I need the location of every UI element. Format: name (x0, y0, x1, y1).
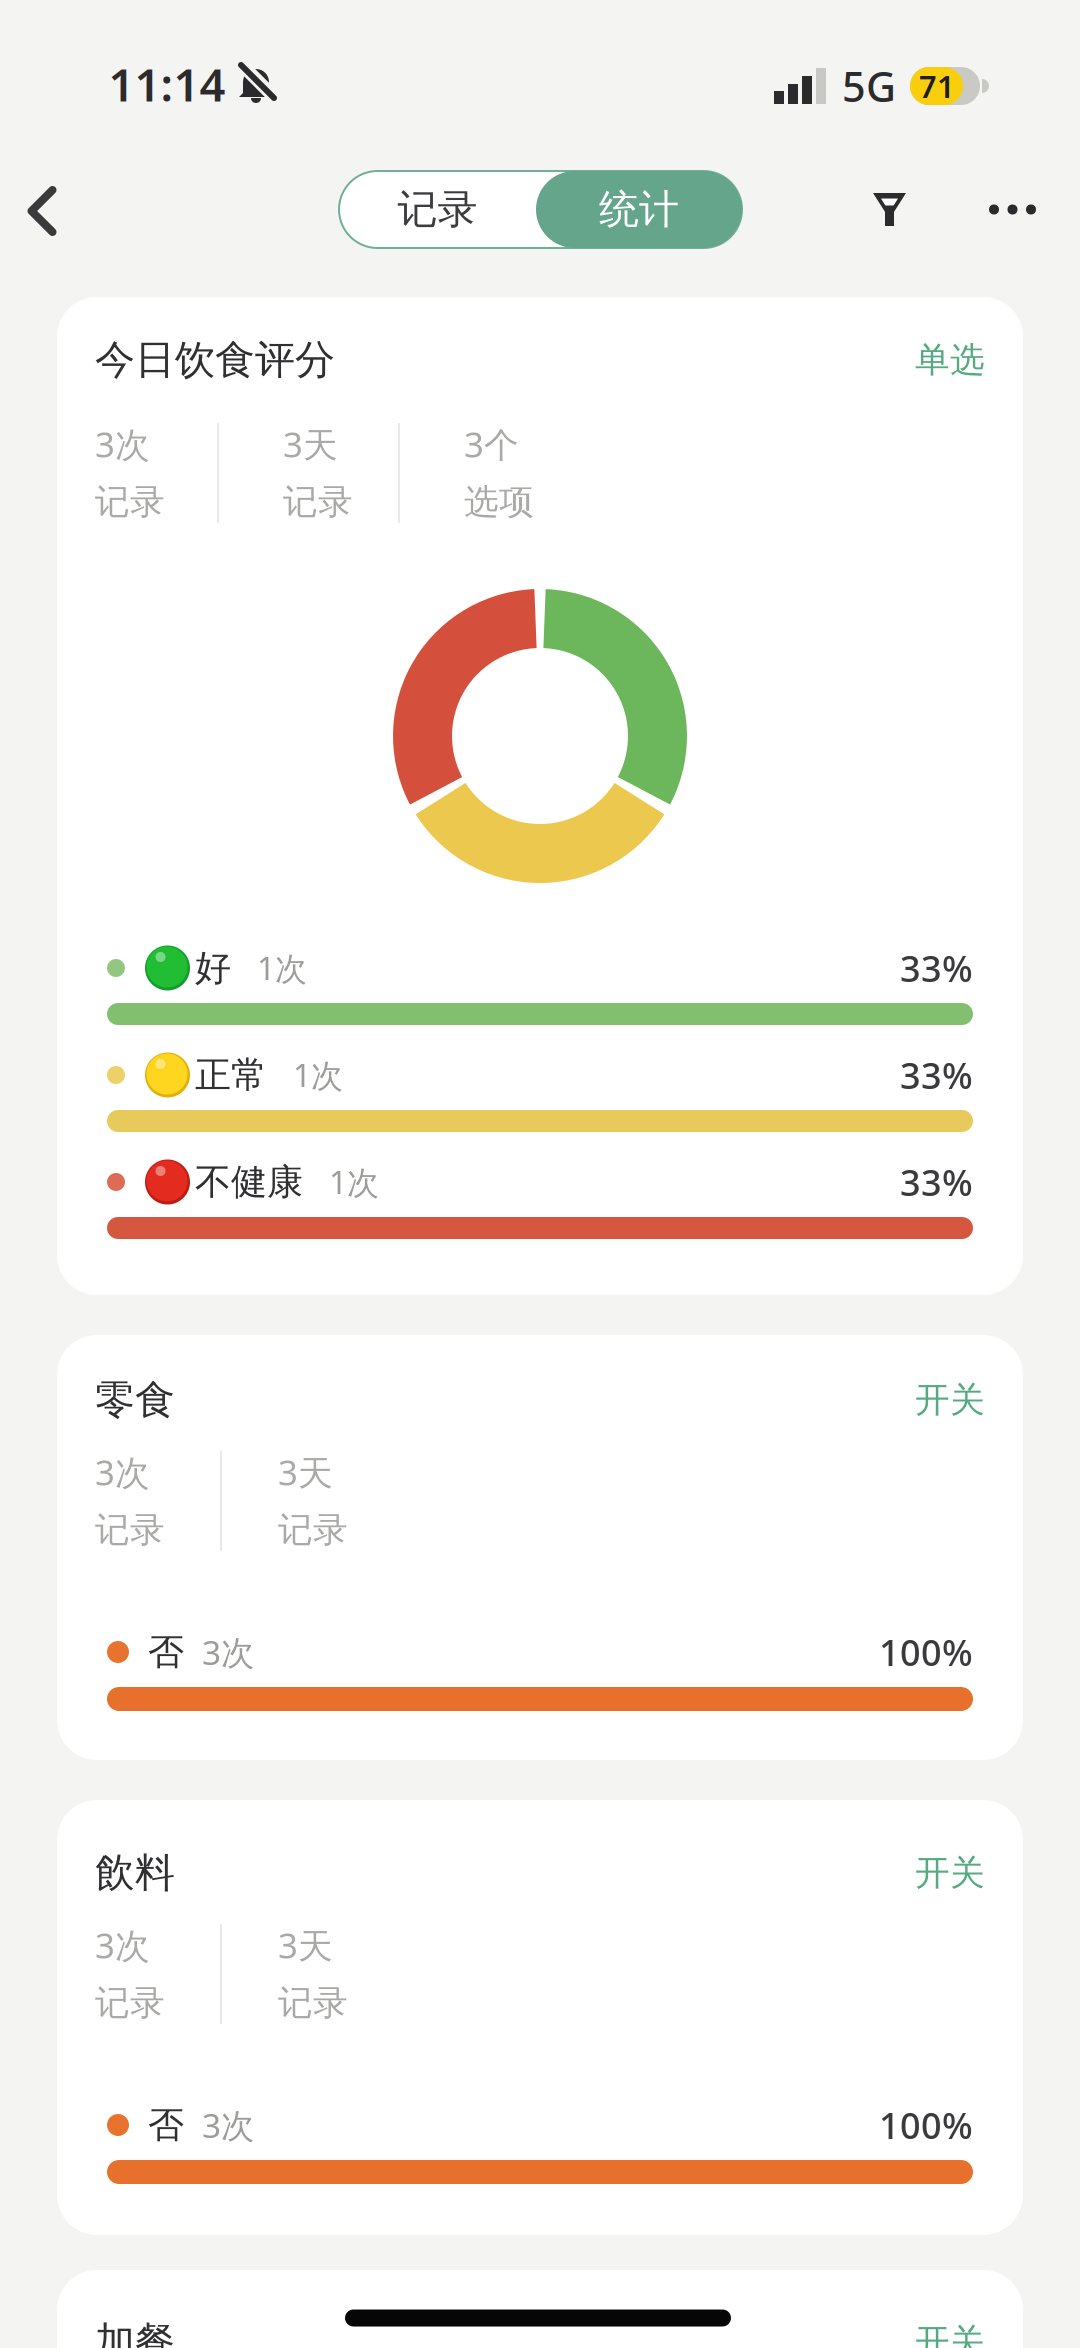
staticText: 5G (842, 59, 896, 113)
staticText: 33% (900, 1158, 973, 1206)
staticText: 单选 (915, 339, 985, 381)
button[interactable]: Filter (857, 177, 921, 241)
staticText: 记录 (95, 1509, 165, 1551)
staticText: 开关 (915, 2321, 985, 2348)
staticText: 33% (900, 1051, 973, 1099)
button[interactable]: 记录 (339, 171, 536, 248)
staticText: 记录 (283, 481, 353, 523)
staticText: 11:14 (108, 54, 225, 114)
staticText: 1次 (293, 1054, 343, 1096)
staticText: 71 (919, 66, 955, 106)
staticText: 否 (148, 1630, 184, 1674)
button[interactable]: 单选 (915, 339, 985, 381)
staticText: 3次 (202, 1630, 254, 1674)
staticText: 3天 (278, 1922, 333, 1968)
staticText: 3次 (95, 1449, 150, 1495)
staticText: 记录 (95, 1982, 165, 2024)
button[interactable]: More (974, 179, 1050, 239)
staticText: 3天 (283, 421, 338, 467)
button[interactable]: 开关 (915, 1852, 985, 1894)
staticText: 加餐 (95, 2317, 175, 2348)
staticText: 记录 (278, 1509, 348, 1551)
button[interactable]: 开关 (915, 2321, 985, 2348)
staticText: 1次 (329, 1161, 379, 1203)
staticText: 飲料 (95, 1848, 175, 1897)
staticText: 今日饮食评分 (95, 335, 335, 384)
staticText: 33% (900, 944, 973, 992)
staticText: 记录 (278, 1982, 348, 2024)
staticText: 记录 (95, 481, 165, 523)
staticText: 3天 (278, 1449, 333, 1495)
staticText: 1次 (257, 947, 307, 989)
staticText: 零食 (95, 1375, 175, 1424)
staticText: 不健康 (195, 1160, 303, 1204)
staticText: 100% (879, 1628, 973, 1676)
staticText: 开关 (915, 1852, 985, 1894)
staticText: 统计 (599, 185, 679, 234)
staticText: 否 (148, 2103, 184, 2147)
staticText: 100% (879, 2101, 973, 2149)
staticText: 记录 (397, 185, 477, 234)
staticText: 3个 (464, 421, 519, 467)
staticText: 好 (195, 946, 231, 990)
staticText: 开关 (915, 1379, 985, 1421)
staticText: 3次 (95, 1922, 150, 1968)
button[interactable]: Back (9, 179, 73, 243)
staticText: 3次 (95, 421, 150, 467)
button[interactable]: 统计 (536, 171, 742, 248)
staticText: 正常 (195, 1053, 267, 1097)
button[interactable]: 开关 (915, 1379, 985, 1421)
staticText: 3次 (202, 2103, 254, 2147)
staticText: 选项 (464, 481, 534, 523)
